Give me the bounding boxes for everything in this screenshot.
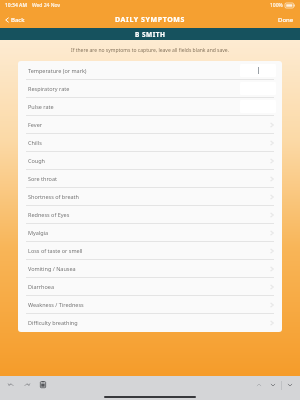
staticText: Sore throat [28, 175, 268, 182]
button[interactable]: Diarrhoea [18, 278, 282, 295]
button[interactable]: Select option [268, 121, 276, 129]
button[interactable]: Redo [21, 379, 33, 391]
staticText: Vomiting / Nausea [28, 265, 268, 272]
staticText: Cough [28, 157, 268, 164]
button[interactable]: Select option [268, 301, 276, 309]
staticText: Pulse rate [28, 103, 240, 110]
button[interactable]: Paste [37, 378, 49, 391]
staticText: Chills [28, 139, 268, 146]
button[interactable]: Difficulty breathing [18, 314, 282, 331]
button[interactable]: Select option [268, 247, 276, 255]
button[interactable]: Loss of taste or smell [18, 242, 282, 259]
button[interactable]: Chills [18, 134, 282, 151]
staticText: Back [11, 16, 25, 24]
staticText: Temperature (or mark) [28, 67, 240, 74]
staticText: Myalgia [28, 229, 268, 236]
button[interactable]: Select option [268, 319, 276, 327]
staticText: Loss of taste or smell [28, 247, 268, 254]
button[interactable]: Select option [268, 211, 276, 219]
button[interactable]: Myalgia [18, 224, 282, 241]
button[interactable]: Select option [268, 139, 276, 147]
button[interactable]: Next field [267, 379, 279, 391]
button[interactable]: Cough [18, 152, 282, 169]
button[interactable]: Select option [268, 229, 276, 237]
staticText: Respiratory rate [28, 85, 240, 92]
staticText: B SMITH [135, 30, 166, 39]
staticText: Fever [28, 121, 268, 128]
button[interactable]: Undo [5, 379, 17, 391]
button[interactable]: Select option [268, 175, 276, 183]
button[interactable]: Temperature (or mark) [18, 62, 282, 79]
button[interactable]: Done [272, 13, 300, 27]
button[interactable]: Select option [268, 157, 276, 165]
staticText: Shortness of breath [28, 193, 268, 200]
button[interactable]: Respiratory rate [18, 80, 282, 97]
staticText: Wed 24 Nov [32, 2, 61, 9]
button[interactable] [240, 64, 276, 77]
button[interactable]: Pulse rate [18, 98, 282, 115]
staticText: 100% [270, 2, 283, 9]
staticText: If there are no symptoms to capture, lea… [0, 47, 300, 54]
staticText: Difficulty breathing [28, 319, 268, 326]
staticText: Weakness / Tiredness [28, 301, 268, 308]
button[interactable]: Select option [268, 265, 276, 273]
staticText: Diarrhoea [28, 283, 268, 290]
staticText: DAILY SYMPTOMS [115, 15, 185, 25]
button[interactable]: Sore throat [18, 170, 282, 187]
button[interactable]: Fever [18, 116, 282, 133]
staticText: 10:34 AM [5, 2, 27, 9]
staticText: Redness of Eyes [28, 211, 268, 218]
button[interactable]: Weakness / Tiredness [18, 296, 282, 313]
button[interactable]: Hide keyboard [284, 379, 296, 391]
button[interactable]: Shortness of breath [18, 188, 282, 205]
button[interactable]: Vomiting / Nausea [18, 260, 282, 277]
button[interactable]: Previous field [253, 379, 265, 391]
button[interactable]: Back [0, 13, 31, 27]
button[interactable]: Select option [268, 283, 276, 291]
button[interactable]: Redness of Eyes [18, 206, 282, 223]
staticText: Done [278, 16, 294, 24]
button[interactable]: Select option [268, 193, 276, 201]
